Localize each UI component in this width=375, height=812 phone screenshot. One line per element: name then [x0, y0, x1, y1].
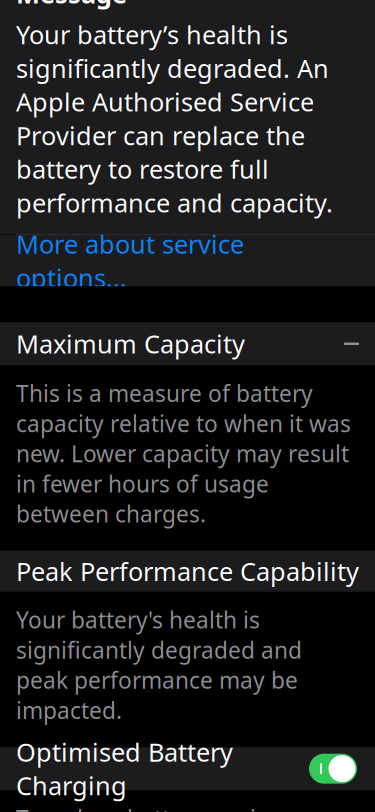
staticText: Your battery’s health is significantly d…	[16, 18, 333, 219]
button[interactable]: Optimised Battery Charging	[0, 747, 375, 790]
button[interactable]: Maximum Capacity	[0, 322, 375, 365]
staticText: Peak Performance Capability	[16, 554, 359, 588]
staticText: More about service options...	[16, 227, 244, 294]
staticText: Maximum Capacity	[16, 327, 245, 360]
staticText: Your battery's health is significantly d…	[16, 605, 302, 725]
staticText: This is a measure of battery capacity re…	[16, 378, 351, 529]
staticText: To reduce battery ageing, iPhone learns …	[16, 803, 341, 812]
staticText: Optimised Battery Charging	[16, 735, 233, 802]
button[interactable]: Peak Performance Capability	[0, 551, 375, 592]
button[interactable]: More about service options...	[0, 235, 375, 286]
staticText: Important Battery Message	[16, 0, 248, 11]
